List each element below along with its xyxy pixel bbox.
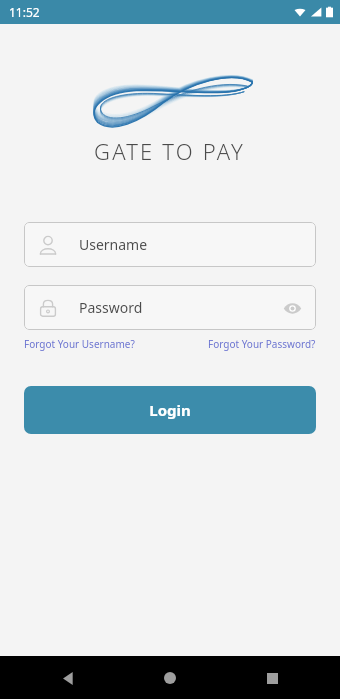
staticText: 11:52 [9, 4, 40, 20]
button[interactable]: Username [24, 222, 316, 267]
button[interactable]: Home [154, 662, 186, 694]
button[interactable]: Recent apps [256, 662, 288, 694]
button[interactable]: Login [24, 386, 316, 434]
staticText: GATE TO PAY [94, 136, 246, 166]
button[interactable]: Back [52, 662, 84, 694]
staticText: Forgot Your Password? [208, 337, 316, 351]
other: Gate To Pay logo [86, 67, 254, 129]
staticText: Forgot Your Username? [24, 337, 135, 351]
button[interactable]: Show password [280, 296, 304, 320]
button[interactable]: Password [24, 285, 316, 330]
staticText: Login [149, 400, 191, 420]
staticText: Password [79, 298, 280, 317]
button[interactable]: Forgot Your Username? [24, 337, 135, 351]
button[interactable]: Forgot Your Password? [208, 337, 316, 351]
staticText: Username [79, 235, 304, 254]
